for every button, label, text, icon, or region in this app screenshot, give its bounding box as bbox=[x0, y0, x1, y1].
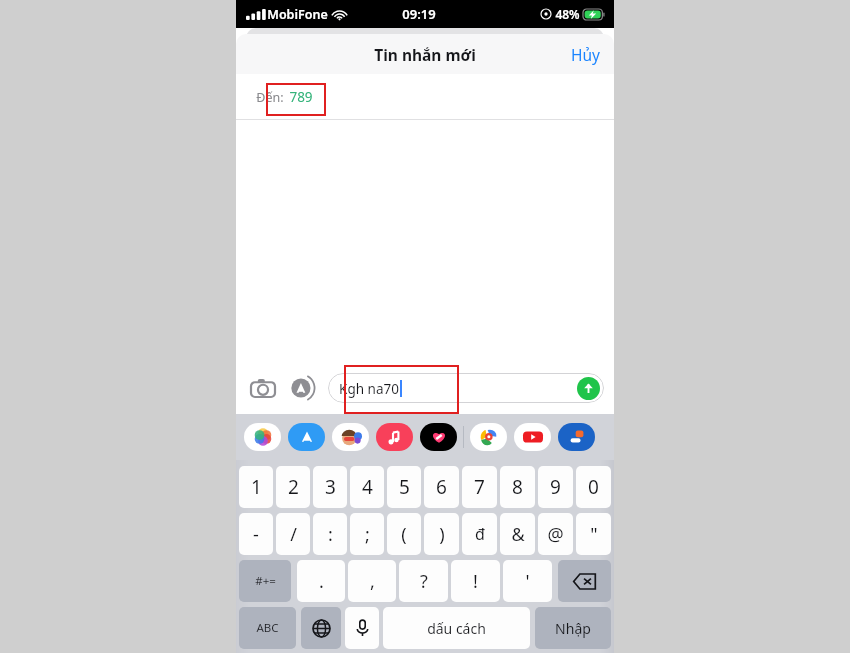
button[interactable]: Nhập bbox=[535, 607, 611, 649]
button[interactable]: - bbox=[239, 513, 273, 555]
staticText: . bbox=[319, 569, 324, 594]
button[interactable]: ; bbox=[350, 513, 384, 555]
staticText: dấu cách bbox=[427, 619, 486, 638]
staticText: Nhập bbox=[555, 619, 591, 638]
button[interactable]: / bbox=[276, 513, 310, 555]
staticText: 789 bbox=[289, 88, 313, 106]
button[interactable]: 5 bbox=[387, 466, 421, 508]
button[interactable]: App bbox=[288, 423, 325, 451]
button[interactable]: 2 bbox=[276, 466, 310, 508]
button[interactable]: , bbox=[348, 560, 396, 602]
button[interactable]: & bbox=[500, 513, 535, 555]
staticText: 9 bbox=[550, 474, 561, 500]
button[interactable]: App bbox=[558, 423, 595, 451]
button[interactable]: 7 bbox=[462, 466, 497, 508]
staticText: ' bbox=[525, 569, 530, 594]
staticText: 8 bbox=[512, 474, 523, 500]
staticText: Tin nhắn mới bbox=[374, 44, 476, 65]
button[interactable]: " bbox=[576, 513, 611, 555]
staticText: 0 bbox=[588, 474, 599, 500]
staticText: ! bbox=[473, 569, 478, 594]
button[interactable]: @ bbox=[538, 513, 573, 555]
button[interactable]: 4 bbox=[350, 466, 384, 508]
button[interactable]: App bbox=[420, 423, 457, 451]
staticText: ; bbox=[365, 522, 370, 547]
staticText: 1 bbox=[251, 474, 262, 500]
button[interactable]: Change keyboard bbox=[301, 607, 341, 649]
button[interactable]: App bbox=[514, 423, 551, 451]
staticText: 5 bbox=[399, 474, 410, 500]
button[interactable]: 9 bbox=[538, 466, 573, 508]
button[interactable]: ! bbox=[451, 560, 500, 602]
button[interactable]: dấu cách bbox=[383, 607, 530, 649]
staticText: - bbox=[253, 522, 259, 547]
staticText: 2 bbox=[288, 474, 299, 500]
staticText: 09:19 bbox=[402, 5, 436, 23]
button[interactable]: 8 bbox=[500, 466, 535, 508]
staticText: / bbox=[290, 522, 297, 547]
staticText: đ bbox=[475, 523, 485, 545]
staticText: #+= bbox=[255, 573, 276, 589]
staticText: : bbox=[328, 522, 333, 547]
staticText: Đến: bbox=[256, 89, 284, 106]
staticText: Kgh na70 bbox=[339, 380, 399, 398]
button[interactable]: 1 bbox=[239, 466, 273, 508]
button[interactable]: : bbox=[313, 513, 347, 555]
staticText: @ bbox=[547, 522, 564, 547]
button[interactable]: App Store bbox=[286, 371, 320, 405]
button[interactable]: 0 bbox=[576, 466, 611, 508]
staticText: & bbox=[511, 522, 525, 547]
button[interactable]: ? bbox=[399, 560, 448, 602]
button[interactable]: App bbox=[244, 423, 281, 451]
staticText: 3 bbox=[325, 474, 336, 500]
staticText: 7 bbox=[474, 474, 485, 500]
staticText: MobiFone bbox=[267, 6, 328, 23]
button[interactable]: . bbox=[297, 560, 345, 602]
button[interactable]: Hủy bbox=[557, 38, 614, 71]
button[interactable]: 3 bbox=[313, 466, 347, 508]
button[interactable]: Camera bbox=[246, 371, 280, 405]
staticText: 6 bbox=[436, 474, 447, 500]
staticText: " bbox=[590, 522, 598, 547]
button[interactable]: App bbox=[376, 423, 413, 451]
staticText: ABC bbox=[256, 620, 279, 636]
button[interactable]: Backspace bbox=[558, 560, 611, 602]
button[interactable]: Dictation bbox=[345, 607, 379, 649]
staticText: ) bbox=[439, 522, 445, 547]
staticText: , bbox=[370, 569, 375, 594]
staticText: ( bbox=[401, 522, 407, 547]
button[interactable]: ABC bbox=[239, 607, 296, 649]
button[interactable]: ' bbox=[503, 560, 552, 602]
staticText: ? bbox=[420, 569, 428, 594]
button[interactable]: ) bbox=[424, 513, 459, 555]
staticText: 4 bbox=[362, 474, 373, 500]
button[interactable]: 6 bbox=[424, 466, 459, 508]
button[interactable]: Kgh na70 bbox=[328, 373, 604, 403]
staticText: Hủy bbox=[571, 44, 600, 65]
button[interactable]: App bbox=[470, 423, 507, 451]
button[interactable]: App bbox=[332, 423, 369, 451]
button[interactable]: Send bbox=[577, 377, 600, 400]
button[interactable]: #+= bbox=[239, 560, 291, 602]
button[interactable]: ( bbox=[387, 513, 421, 555]
button[interactable]: đ bbox=[462, 513, 497, 555]
staticText: 48% bbox=[555, 6, 580, 22]
